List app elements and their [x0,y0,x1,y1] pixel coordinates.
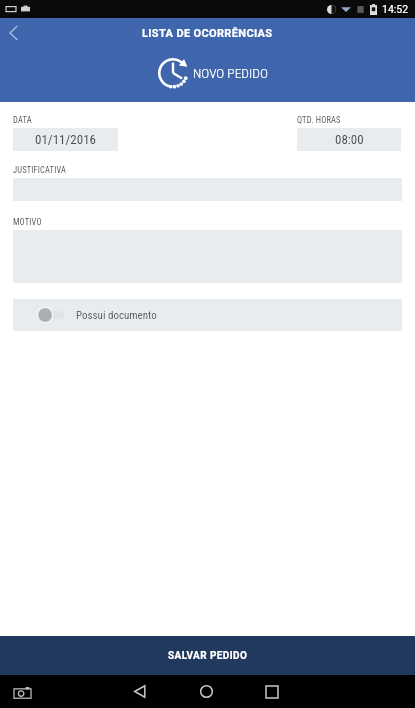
staticText: Possui documento [76,309,157,322]
staticText: NOVO PEDIDO [193,65,268,81]
staticText: 01/11/2016 [35,132,96,147]
staticText: SALVAR PEDIDO [168,650,248,662]
button[interactable]: 08:00 [297,128,401,151]
button[interactable]: Voltar [2,22,24,44]
staticText: JUSTIFICATIVA [13,165,67,175]
button[interactable]: Home [185,675,227,708]
button[interactable]: Recents [251,675,293,708]
staticText: 14:52 [382,3,409,15]
staticText: DATA [13,115,32,125]
staticText: LISTA DE OCORRÊNCIAS [142,27,273,40]
staticText: 08:00 [335,132,364,147]
staticText: MOTIVO [13,217,42,227]
button[interactable]: Screenshot [10,680,34,704]
button[interactable]: 01/11/2016 [13,128,118,151]
button[interactable]: SALVAR PEDIDO [0,636,415,675]
button[interactable]: Back [119,675,161,708]
staticText: QTD. HORAS [297,115,341,125]
button[interactable]: Possui documento [13,299,402,331]
